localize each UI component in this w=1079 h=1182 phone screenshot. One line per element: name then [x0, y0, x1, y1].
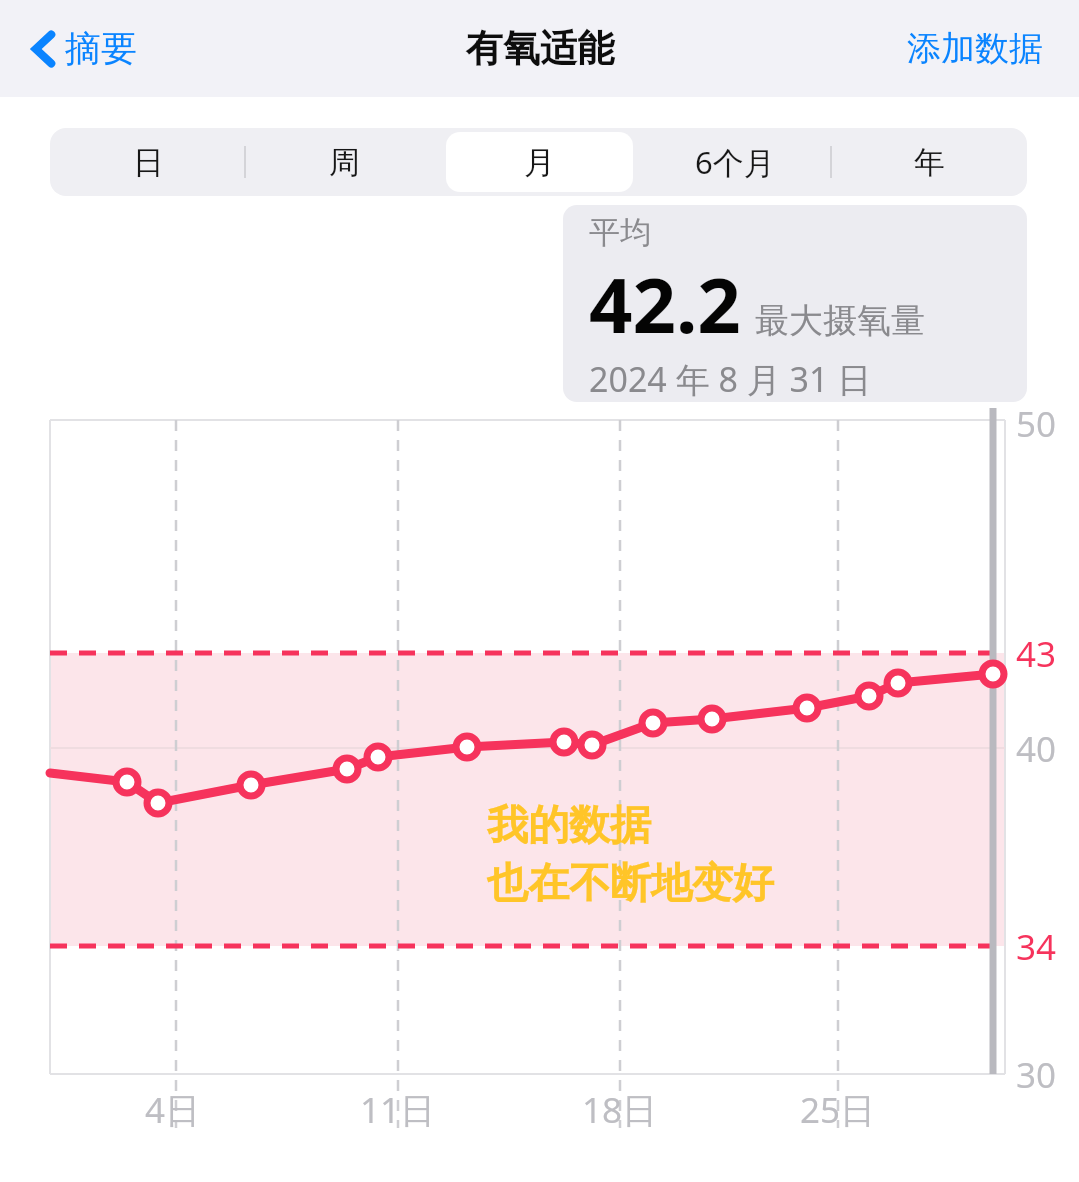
- button[interactable]: 摘要: [22, 18, 145, 79]
- staticText: 42.2: [589, 252, 741, 356]
- button[interactable]: 月: [446, 132, 633, 192]
- staticText: 6个月: [695, 141, 775, 183]
- staticText: 我的数据: [487, 800, 651, 852]
- button[interactable]: 周: [250, 132, 438, 192]
- staticText: 月: [524, 143, 555, 182]
- staticText: 年: [914, 143, 945, 182]
- staticText: 34: [1016, 923, 1057, 971]
- staticText: 30: [1016, 1051, 1057, 1099]
- staticText: 25日: [800, 1086, 876, 1134]
- staticText: 日: [133, 143, 164, 182]
- staticText: 11日: [360, 1086, 436, 1134]
- staticText: 有氧适能: [466, 25, 614, 72]
- staticText: 周: [329, 143, 360, 182]
- button[interactable]: 添加数据: [901, 21, 1049, 76]
- staticText: 18日: [582, 1086, 658, 1134]
- button[interactable]: 年: [836, 132, 1023, 192]
- staticText: 添加数据: [907, 27, 1043, 70]
- staticText: 50: [1016, 400, 1057, 448]
- staticText: 43: [1016, 630, 1057, 678]
- staticText: 摘要: [65, 26, 137, 71]
- button[interactable]: 平均: [563, 205, 1027, 402]
- staticText: 平均: [589, 213, 651, 252]
- staticText: 40: [1016, 725, 1057, 773]
- staticText: 最大摄氧量: [755, 299, 925, 342]
- button[interactable]: 日: [54, 132, 242, 192]
- staticText: 也在不断地变好: [487, 858, 774, 910]
- staticText: 2024 年 8 月 31 日: [589, 356, 872, 402]
- button[interactable]: 6个月: [641, 132, 828, 192]
- staticText: 4日: [145, 1086, 201, 1134]
